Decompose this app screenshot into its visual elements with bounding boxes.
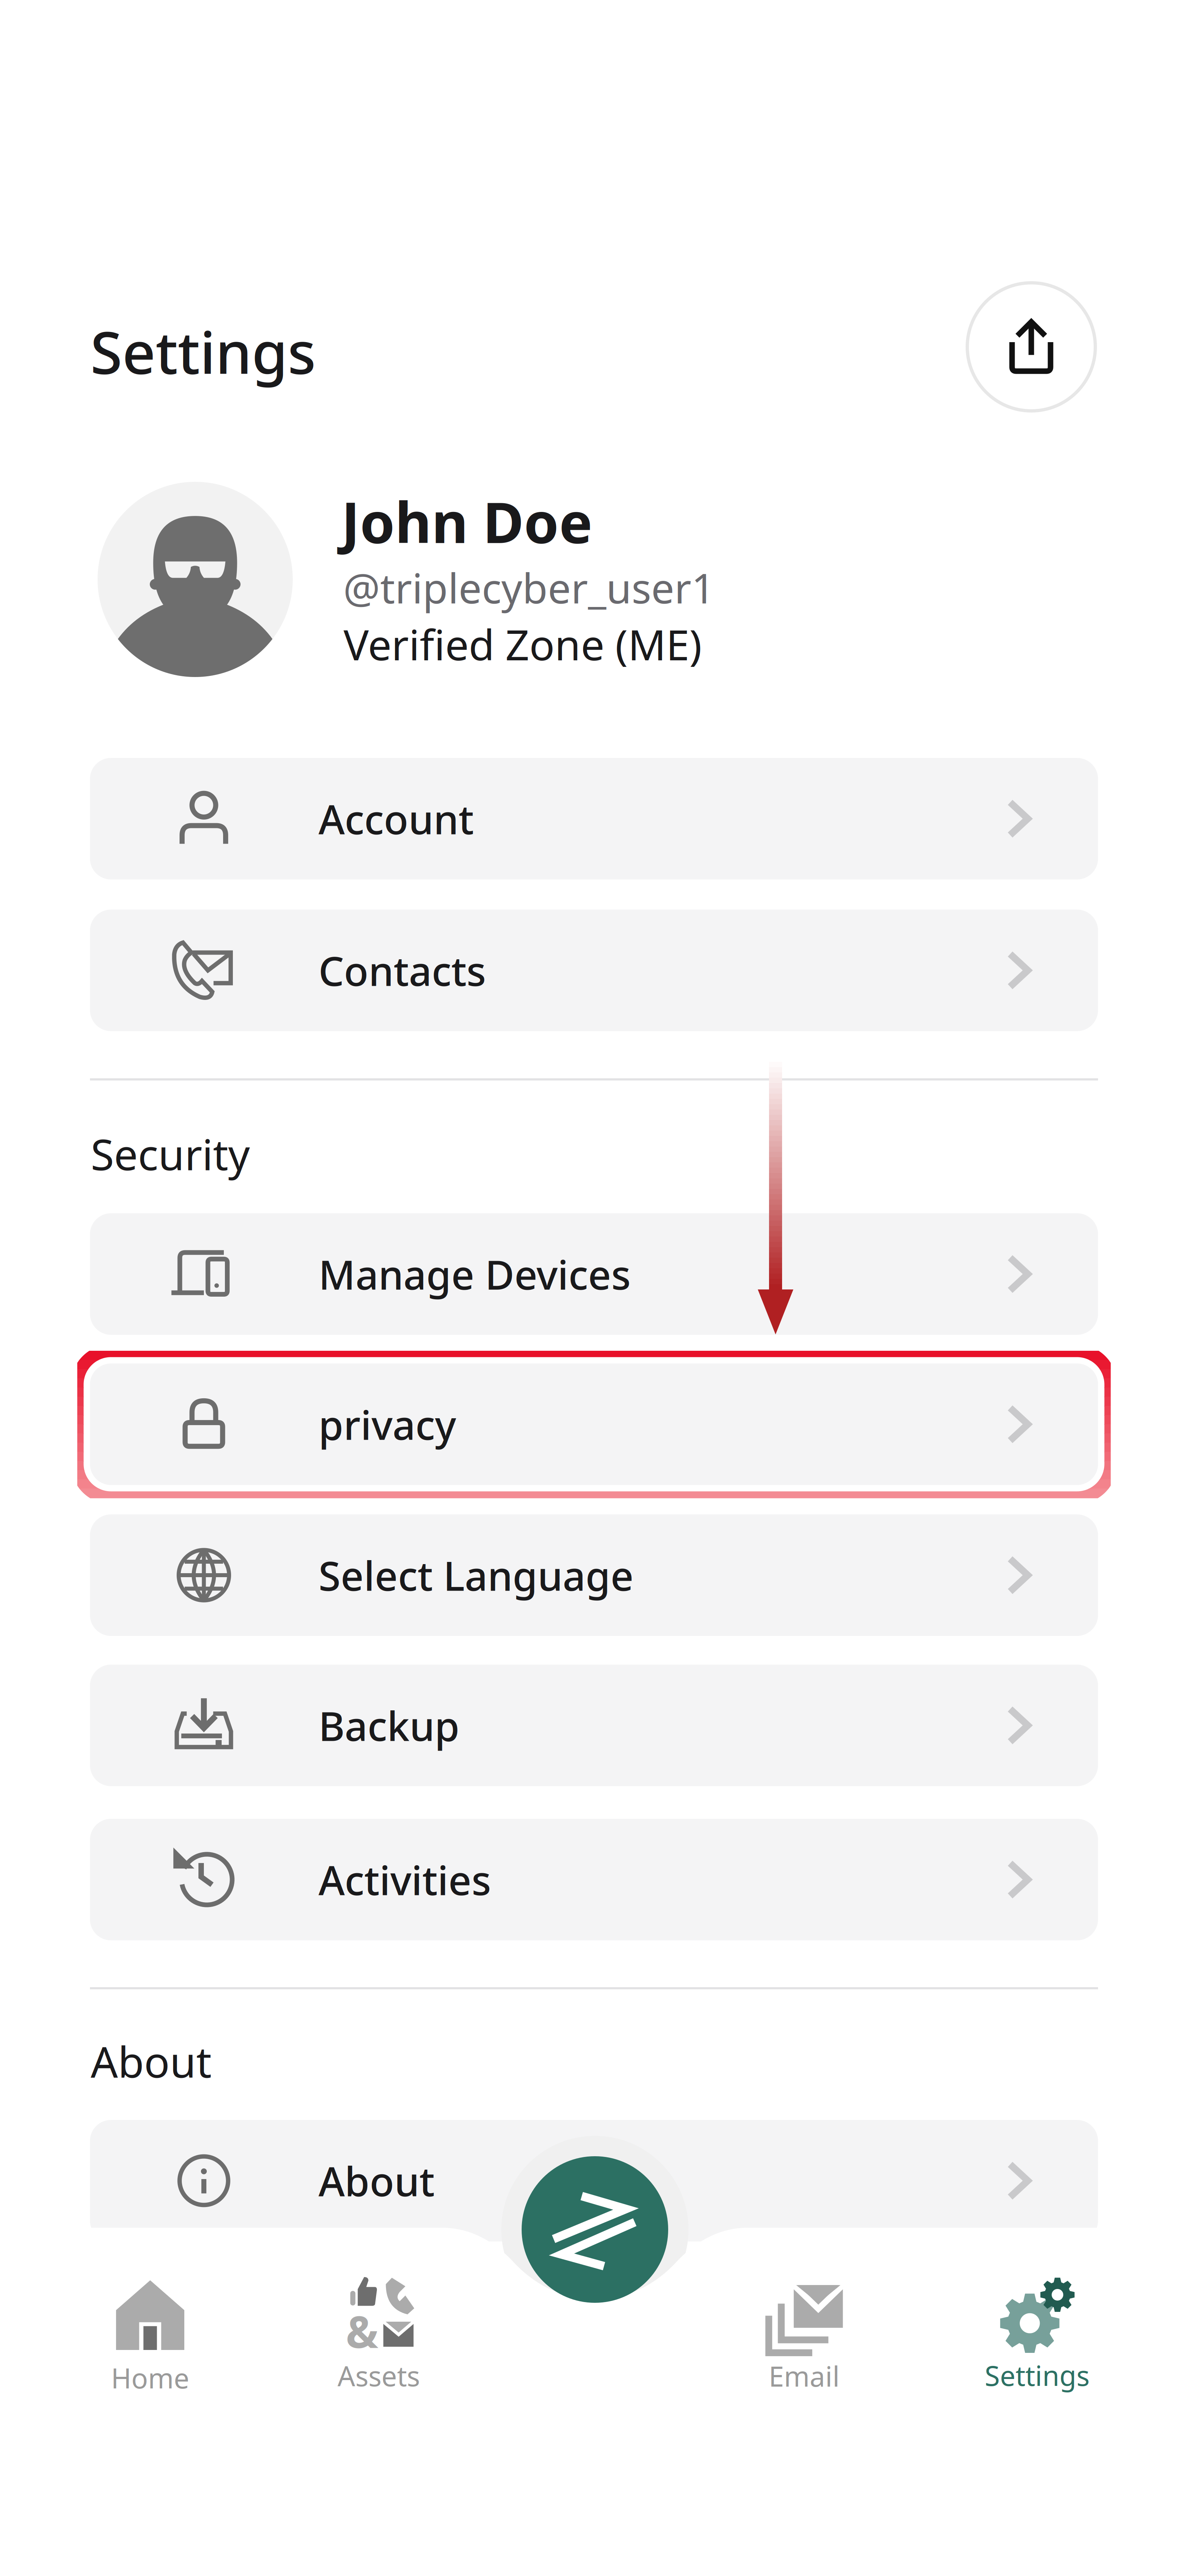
staticText: Verified Zone (ME) [344, 616, 702, 672]
staticText: Security [91, 1125, 250, 1182]
staticText: @triplecyber_user1 [343, 560, 715, 615]
staticText: & [346, 2302, 378, 2360]
button[interactable]: Settings [957, 2276, 1117, 2421]
staticText: Manage Devices [318, 1247, 631, 1301]
staticText: About [91, 2033, 211, 2089]
button[interactable]: Email [724, 2277, 884, 2422]
button[interactable]: Share [966, 281, 1097, 413]
button[interactable]: Manage Devices [90, 1213, 1098, 1335]
button[interactable]: New message [522, 2156, 668, 2303]
staticText: John Doe [341, 484, 592, 559]
staticText: Account [318, 792, 474, 845]
button[interactable]: Activities [90, 1819, 1098, 1940]
staticText: Home [111, 2359, 189, 2396]
button[interactable]: Backup [90, 1665, 1098, 1786]
staticText: Assets [338, 2357, 420, 2394]
button[interactable]: Account [90, 758, 1098, 879]
staticText: Email [769, 2358, 840, 2394]
staticText: privacy [318, 1398, 456, 1451]
button[interactable]: About [90, 2120, 1098, 2241]
button[interactable]: Select Language [90, 1514, 1098, 1636]
button[interactable]: & [299, 2277, 459, 2422]
staticText: Backup [318, 1699, 460, 1752]
button[interactable]: Home [70, 2279, 230, 2424]
staticText: Contacts [318, 944, 486, 997]
staticText: About [318, 2154, 435, 2207]
staticText: Select Language [318, 1549, 634, 1602]
staticText: Settings [985, 2357, 1090, 2393]
button[interactable]: privacy [90, 1363, 1098, 1485]
staticText: Settings [90, 313, 316, 390]
staticText: Activities [318, 1853, 491, 1906]
button[interactable]: Contacts [90, 910, 1098, 1031]
